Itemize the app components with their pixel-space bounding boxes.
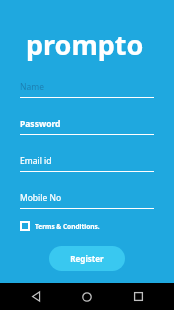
button[interactable]: Terms & Conditions. <box>19 218 101 234</box>
button[interactable]: Email id <box>0 155 174 172</box>
staticText: Terms & Conditions. <box>35 222 100 231</box>
staticText: Name <box>20 81 44 93</box>
button[interactable]: Name <box>0 81 174 98</box>
staticText: Email id <box>20 155 52 167</box>
button[interactable]: Password <box>0 118 174 135</box>
button[interactable]: Back <box>21 283 51 310</box>
button[interactable]: Mobile No <box>0 192 174 209</box>
staticText: prompto <box>26 26 174 63</box>
staticText: Password <box>20 118 61 130</box>
button[interactable]: Home <box>72 283 102 310</box>
button[interactable]: Register <box>49 246 125 271</box>
staticText: Register <box>70 253 104 264</box>
staticText: Mobile No <box>20 192 62 204</box>
button[interactable]: Recent apps <box>123 283 153 310</box>
